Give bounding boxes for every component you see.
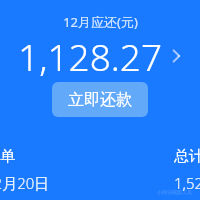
other: View bill details xyxy=(170,46,182,66)
button[interactable]: 总计 xyxy=(174,147,200,193)
staticText: 总计 xyxy=(174,147,200,166)
button[interactable]: 立即还款 xyxy=(52,82,148,117)
staticText: 12月应还(元) xyxy=(63,13,138,31)
staticText: 立即还款 xyxy=(68,90,132,110)
staticText: 小鸡仔截图工具 xyxy=(157,189,192,195)
button[interactable]: 账单 xyxy=(0,147,50,193)
staticText: 账单 xyxy=(0,147,15,166)
button[interactable]: 1,128.27 xyxy=(0,31,200,81)
staticText: 1,527 xyxy=(174,173,200,193)
staticText: 12月20日 xyxy=(0,173,50,193)
staticText: 1,128.27 xyxy=(18,31,163,81)
